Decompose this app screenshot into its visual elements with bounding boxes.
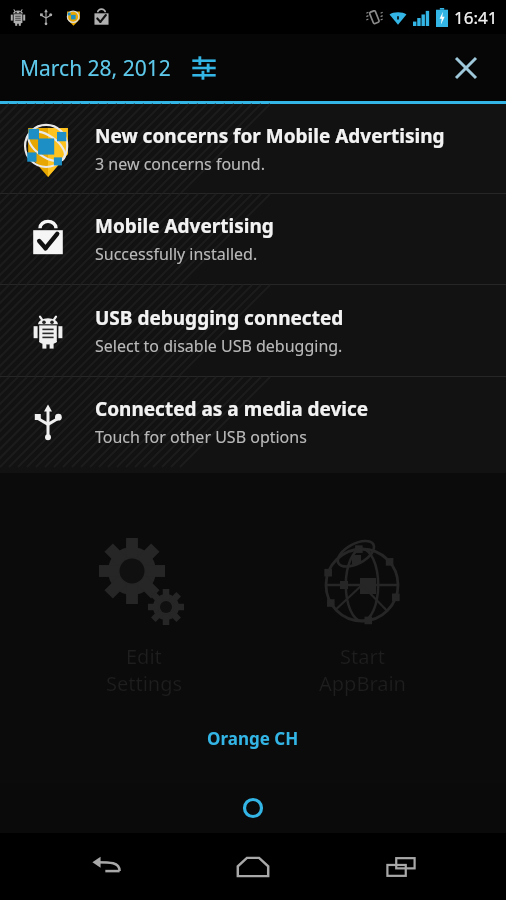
staticText: 3 new concerns found. (95, 153, 266, 175)
staticText: Successfully installed. (95, 243, 258, 265)
button[interactable]: Start (287, 533, 437, 697)
staticText: Settings (106, 670, 183, 697)
staticText: Connected as a media device (95, 396, 369, 422)
staticText: 16:41 (454, 6, 498, 29)
button[interactable]: Back (64, 833, 148, 900)
staticText: Mobile Advertising (95, 213, 274, 239)
staticText: Orange CH (207, 727, 299, 750)
button[interactable]: Connected as a media device (0, 377, 506, 467)
staticText: Select to disable USB debugging. (95, 335, 343, 357)
staticText: AppBrain (319, 670, 406, 697)
button[interactable]: New concerns for Mobile Advertising (0, 104, 506, 193)
button[interactable]: Settings (187, 51, 221, 85)
staticText: March 28, 2012 (20, 54, 171, 83)
button[interactable]: Clear all notifications (444, 46, 488, 90)
button[interactable]: March 28, 2012 (20, 51, 221, 85)
button[interactable]: Recent apps (359, 833, 443, 900)
staticText: USB debugging connected (95, 305, 344, 331)
button[interactable]: Home (211, 833, 295, 900)
staticText: Start (340, 643, 385, 670)
staticText: Touch for other USB options (95, 426, 307, 448)
button[interactable]: Close notification shade (231, 786, 275, 830)
button[interactable]: Mobile Advertising (0, 194, 506, 284)
button[interactable]: Edit (69, 533, 219, 697)
staticText: Edit (126, 643, 162, 670)
button[interactable]: USB debugging connected (0, 285, 506, 376)
staticText: New concerns for Mobile Advertising (95, 123, 445, 149)
